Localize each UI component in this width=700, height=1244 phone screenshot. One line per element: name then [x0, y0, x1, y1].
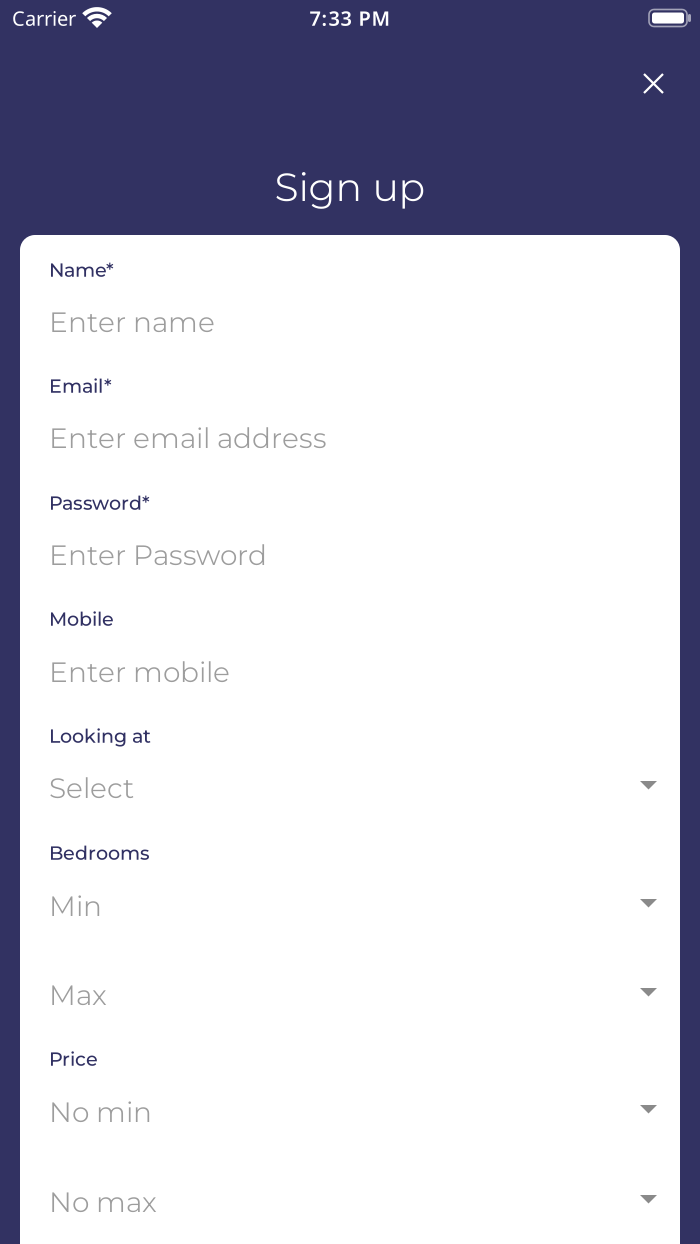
staticText: Carrier — [12, 5, 76, 31]
button[interactable]: Enter name — [49, 303, 657, 341]
button[interactable]: Min — [49, 887, 657, 925]
staticText: 7:33 PM — [309, 5, 390, 31]
staticText: Enter Password — [49, 538, 267, 572]
staticText: Enter name — [49, 305, 215, 339]
staticText: Price — [49, 1047, 98, 1071]
staticText: Min — [49, 889, 102, 923]
staticText: Select — [49, 771, 134, 805]
button[interactable] — [644, 74, 663, 93]
staticText: Mobile — [49, 607, 114, 631]
button[interactable]: Enter mobile — [49, 653, 657, 691]
staticText: Password* — [49, 491, 150, 515]
button[interactable]: Select — [49, 769, 657, 807]
button[interactable]: Enter Password — [49, 536, 657, 574]
button[interactable]: Max — [49, 976, 657, 1014]
staticText: Looking at — [49, 724, 151, 748]
staticText: Enter mobile — [49, 655, 230, 689]
staticText: Bedrooms — [49, 841, 150, 865]
staticText: Max — [49, 978, 107, 1012]
button[interactable]: Enter email address — [49, 419, 657, 457]
button[interactable]: No min — [49, 1093, 657, 1131]
staticText: No max — [49, 1185, 157, 1219]
staticText: Enter email address — [49, 421, 327, 455]
button[interactable]: No max — [49, 1183, 657, 1221]
staticText: No min — [49, 1095, 152, 1129]
staticText: Sign up — [274, 163, 425, 211]
staticText: Name* — [49, 258, 114, 282]
staticText: Email* — [49, 374, 112, 398]
